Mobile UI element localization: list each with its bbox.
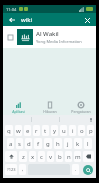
staticText: x [31,153,35,161]
button[interactable]: Select [6,33,15,42]
button[interactable]: o [78,125,85,136]
button[interactable]: f [34,138,42,149]
staticText: t [44,127,47,135]
staticText: h [56,140,60,148]
button[interactable]: , [19,164,26,175]
staticText: q [7,127,11,135]
button[interactable]: k [74,138,82,149]
staticText: r [35,127,38,135]
staticText: . [75,166,77,173]
staticText: Hiburan [43,109,57,114]
button[interactable]: q [5,125,13,136]
button[interactable]: ?123 [5,164,17,175]
button[interactable]: w [15,125,22,136]
button[interactable]: t [42,125,49,136]
staticText: s [18,140,21,148]
staticText: , [22,166,24,173]
staticText: p [89,127,93,135]
staticText: o [80,127,84,135]
button[interactable]: Voice input [87,116,94,123]
staticText: ?123 [7,167,16,172]
button[interactable]: i [69,125,76,136]
staticText: m [75,153,81,161]
button[interactable]: c [38,151,45,162]
staticText: wiki [21,16,33,24]
staticText: a [9,140,13,148]
button[interactable]: g [44,138,52,149]
button[interactable]: . [72,164,79,175]
button[interactable]: y [51,125,58,136]
button[interactable]: z [19,151,27,162]
button[interactable]: Aplikasi [3,101,34,115]
button[interactable]: Shift [5,151,17,162]
button[interactable]: s [16,138,23,149]
button[interactable]: Search [83,165,93,175]
staticText: Yong Media Information [36,39,82,44]
button[interactable]: v [47,151,54,162]
button[interactable]: m [74,151,81,162]
staticText: k [76,140,80,148]
staticText: e [26,127,30,135]
staticText: Aplikasi [12,109,25,114]
staticText: c [40,153,43,161]
staticText: j [67,140,69,148]
staticText: d [27,140,31,148]
staticText: n [67,153,71,161]
staticText: f [37,140,40,148]
staticText: g [46,140,50,148]
button[interactable]: Backspace [83,151,94,162]
button[interactable]: e [24,125,31,136]
button[interactable]: d [25,138,32,149]
button[interactable]: b [56,151,63,162]
button[interactable]: u [60,125,67,136]
button[interactable]: p [87,125,94,136]
staticText: u [62,127,66,135]
button[interactable]: Select [3,26,96,48]
button[interactable]: wiki [21,16,82,24]
staticText: y [53,127,57,135]
button[interactable]: j [64,138,72,149]
button[interactable]: l [84,138,92,149]
staticText: 11:04 [6,7,17,12]
staticText: Pengaturan [71,109,91,114]
button[interactable]: n [65,151,72,162]
staticText: w [16,127,21,135]
staticText: b [58,153,62,161]
button[interactable]: r [33,125,40,136]
button[interactable]: Hiburan [34,101,65,115]
button[interactable]: Clear [82,15,92,25]
staticText: i [72,127,74,135]
button[interactable]: x [29,151,36,162]
staticText: z [22,153,25,161]
staticText: v [49,153,53,161]
button[interactable]: Back [7,15,17,25]
button[interactable]: h [54,138,62,149]
staticText: l [87,140,89,148]
button[interactable]: a [7,138,14,149]
button[interactable]: Pengaturan [65,101,96,115]
staticText: Al Wakil [36,30,59,38]
